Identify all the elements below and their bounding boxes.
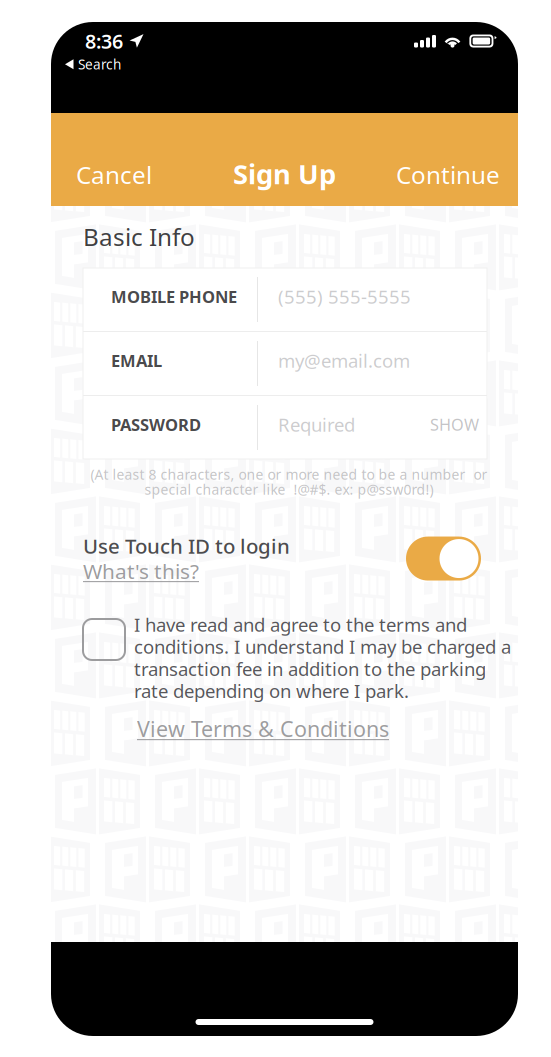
staticText: MOBILE PHONE bbox=[111, 285, 237, 308]
staticText: Basic Info bbox=[83, 220, 195, 253]
staticText: Cancel bbox=[76, 158, 152, 191]
button[interactable]: Use Touch ID to login bbox=[406, 537, 481, 581]
button[interactable]: PASSWORD bbox=[83, 396, 487, 459]
button[interactable]: Cancel bbox=[67, 146, 161, 203]
button[interactable]: I agree to the terms and conditions bbox=[83, 612, 125, 660]
staticText: Search bbox=[78, 55, 121, 73]
staticText: (At least 8 characters, one or more need… bbox=[90, 465, 487, 484]
staticText: (555) 555-5555 bbox=[278, 284, 411, 309]
staticText: my@email.com bbox=[278, 348, 410, 373]
staticText: Required bbox=[278, 412, 355, 437]
staticText: special character like !@#$. ex: p@ssw0r… bbox=[144, 480, 433, 499]
staticText: EMAIL bbox=[111, 349, 162, 372]
button[interactable]: View Terms & Conditions bbox=[137, 714, 389, 743]
button[interactable]: MOBILE PHONE bbox=[83, 268, 487, 331]
staticText: Sign Up bbox=[233, 155, 336, 192]
staticText: Use Touch ID to login bbox=[83, 532, 290, 560]
staticText: SHOW bbox=[430, 413, 479, 436]
staticText: I have read and agree to the terms and c… bbox=[134, 612, 511, 703]
button[interactable]: Continue bbox=[387, 146, 509, 203]
button[interactable]: EMAIL bbox=[83, 332, 487, 395]
staticText: 8:36 bbox=[85, 28, 123, 54]
staticText: PASSWORD bbox=[111, 413, 201, 436]
button[interactable]: What's this? bbox=[83, 557, 199, 585]
staticText: View Terms & Conditions bbox=[137, 714, 389, 743]
staticText: What's this? bbox=[83, 557, 199, 585]
staticText: Continue bbox=[396, 158, 500, 191]
